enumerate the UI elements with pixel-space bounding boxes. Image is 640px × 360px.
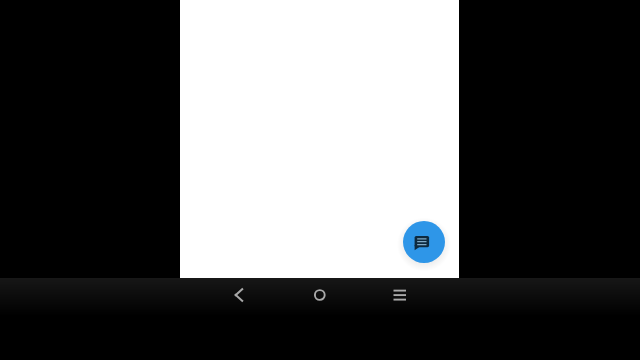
- button[interactable]: [382, 277, 418, 313]
- button[interactable]: [403, 221, 445, 263]
- button[interactable]: [221, 277, 257, 313]
- button[interactable]: [302, 277, 338, 313]
